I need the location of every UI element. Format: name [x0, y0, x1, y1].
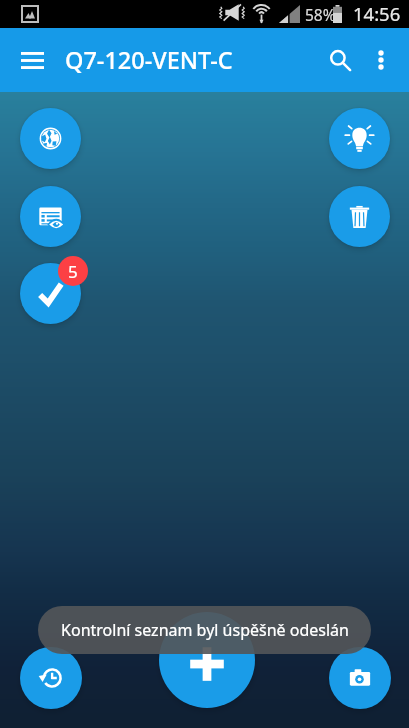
button[interactable]: Add	[159, 612, 255, 708]
button[interactable]: History	[20, 647, 82, 709]
button[interactable]: Preview form	[20, 186, 81, 247]
staticText: 58%	[305, 4, 336, 25]
button[interactable]: Open navigation	[8, 36, 56, 84]
button[interactable]: Delete	[329, 186, 390, 247]
button[interactable]: More options	[357, 36, 405, 84]
button[interactable]: Submit	[20, 263, 81, 324]
staticText: 14:56	[353, 1, 401, 26]
staticText: Kontrolní seznam byl úspěšně odeslán	[61, 619, 349, 641]
button[interactable]: Search	[316, 36, 364, 84]
button[interactable]: Web	[20, 108, 81, 169]
button[interactable]: Camera	[329, 647, 391, 709]
staticText: 5	[68, 260, 78, 283]
button[interactable]: Hints	[329, 108, 390, 169]
staticText: Q7-120-VENT-C	[65, 44, 233, 76]
